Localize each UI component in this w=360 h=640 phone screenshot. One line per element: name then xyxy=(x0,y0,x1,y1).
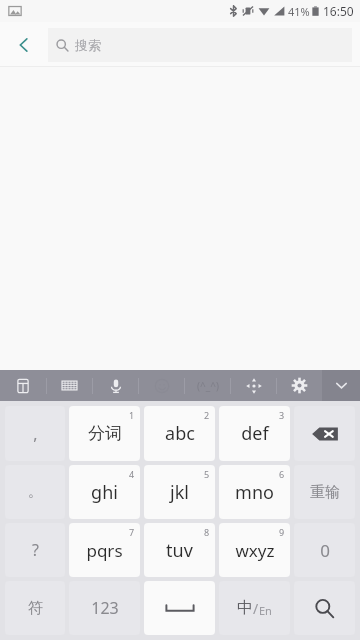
button[interactable]: jkl xyxy=(144,465,215,519)
button[interactable]: Voice input xyxy=(93,370,138,401)
button[interactable]: Back xyxy=(0,22,48,67)
staticText: ghi xyxy=(91,480,118,505)
staticText: ? xyxy=(32,539,39,561)
button[interactable]: 123 xyxy=(69,581,140,635)
button[interactable]: , xyxy=(5,406,65,461)
staticText: 4 xyxy=(129,468,135,480)
staticText: En xyxy=(259,603,272,618)
button[interactable]: Keyboard layout xyxy=(47,370,92,401)
button[interactable]: Clipboard xyxy=(0,370,46,401)
staticText: 3 xyxy=(279,409,285,421)
button[interactable]: def xyxy=(219,406,290,461)
button[interactable]: 分词 xyxy=(69,406,140,461)
staticText: 5 xyxy=(204,468,210,480)
button[interactable]: Search xyxy=(294,581,355,635)
staticText: mno xyxy=(235,480,274,505)
button[interactable]: ? xyxy=(5,523,65,577)
staticText: 搜索 xyxy=(75,37,101,53)
staticText: 16:50 xyxy=(323,3,354,19)
staticText: abc xyxy=(165,421,195,446)
button[interactable]: 搜索 xyxy=(48,28,352,62)
staticText: 2 xyxy=(204,409,210,421)
staticText: pqrs xyxy=(86,539,123,562)
staticText: 符 xyxy=(28,599,43,618)
staticText: 中 xyxy=(237,598,253,618)
button[interactable]: tuv xyxy=(144,523,215,577)
staticText: 6 xyxy=(279,468,285,480)
staticText: 8 xyxy=(204,526,210,538)
staticText: / xyxy=(253,599,259,618)
button[interactable]: mno xyxy=(219,465,290,519)
button[interactable]: 重输 xyxy=(294,465,355,519)
staticText: 重输 xyxy=(310,483,340,502)
staticText: def xyxy=(241,421,269,446)
staticText: 1 xyxy=(129,409,135,421)
staticText: jkl xyxy=(170,480,189,505)
button[interactable]: pqrs xyxy=(69,523,140,577)
staticText: wxyz xyxy=(235,539,275,562)
staticText: , xyxy=(33,423,38,445)
button[interactable]: abc xyxy=(144,406,215,461)
button[interactable]: wxyz xyxy=(219,523,290,577)
staticText: 0 xyxy=(320,539,330,562)
staticText: tuv xyxy=(166,538,193,563)
button[interactable]: Settings xyxy=(277,370,322,401)
staticText: 123 xyxy=(91,597,119,619)
staticText: 。 xyxy=(28,483,42,501)
button[interactable]: ghi xyxy=(69,465,140,519)
staticText: 7 xyxy=(129,526,135,538)
staticText: (^_^) xyxy=(197,379,219,393)
button[interactable]: Space xyxy=(144,581,215,635)
button[interactable]: 0 xyxy=(294,523,355,577)
button[interactable]: Backspace xyxy=(294,406,355,461)
button[interactable]: Move keyboard xyxy=(231,370,276,401)
button[interactable]: Switch language xyxy=(219,581,290,635)
staticText: 41% xyxy=(288,4,310,19)
button[interactable]: 符 xyxy=(5,581,65,635)
button[interactable]: Hide keyboard xyxy=(322,370,360,401)
staticText: 9 xyxy=(279,526,285,538)
staticText: 分词 xyxy=(88,423,122,444)
